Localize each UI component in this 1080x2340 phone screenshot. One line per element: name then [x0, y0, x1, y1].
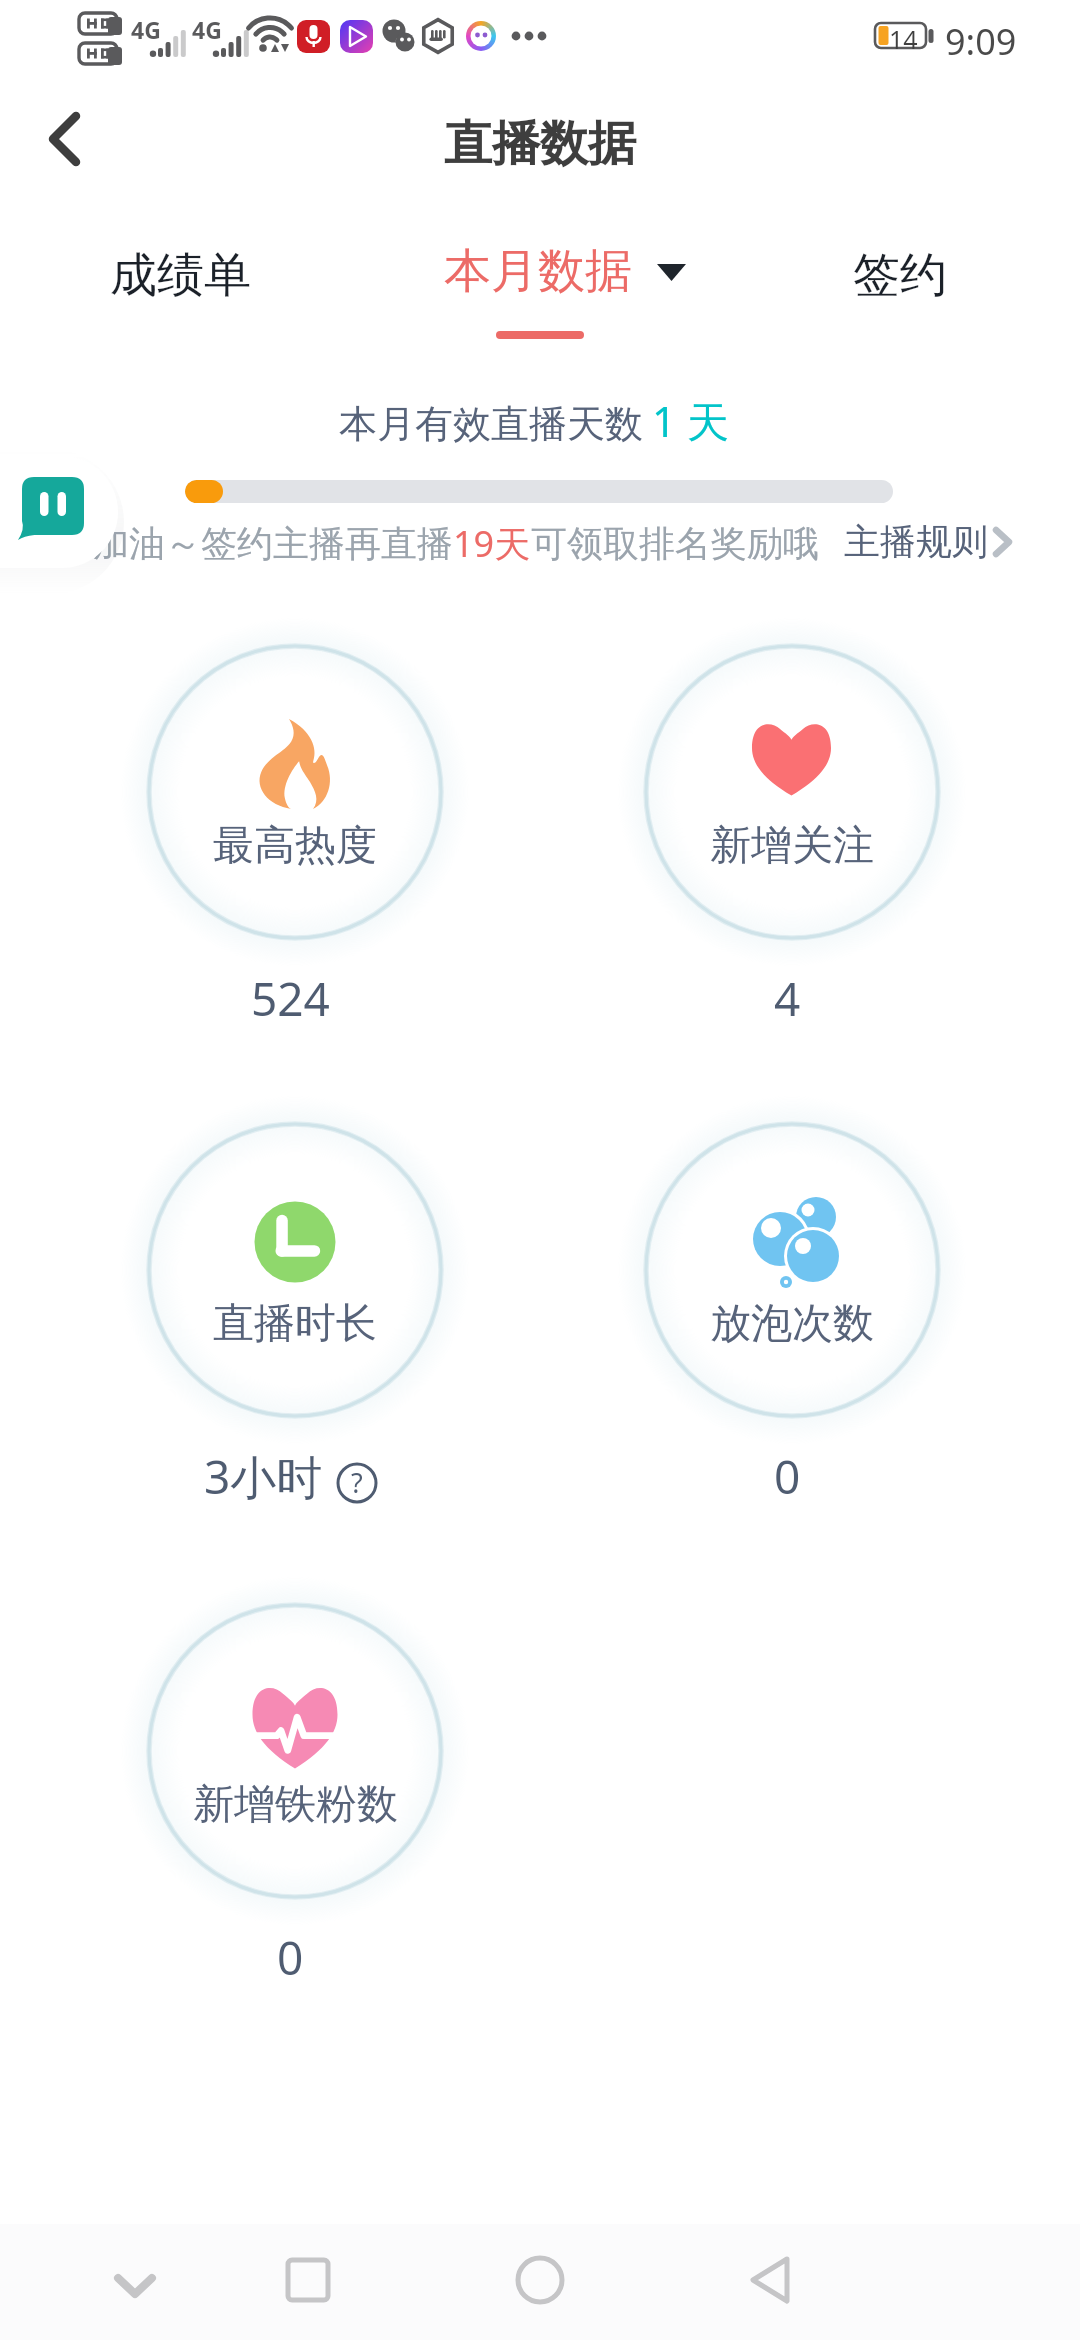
button[interactable]: 本月数据: [430, 228, 700, 338]
staticText: 签约: [853, 246, 947, 305]
staticText: 直播时长: [213, 1298, 377, 1350]
staticText: 加油～签约主播再直播: [93, 521, 453, 566]
button[interactable]: 放泡次数: [612, 1090, 972, 1450]
button[interactable]: 最高热度: [115, 612, 475, 972]
button[interactable]: Hide keyboard: [90, 2235, 180, 2325]
staticText: 14: [889, 22, 918, 56]
staticText: 3小时: [204, 1445, 323, 1508]
staticText: 19天: [453, 519, 531, 568]
staticText: 524: [251, 967, 330, 1030]
staticText: 4G: [192, 14, 222, 45]
staticText: 0: [277, 1926, 304, 1989]
button[interactable]: 签约: [800, 228, 1000, 322]
staticText: 0: [774, 1445, 801, 1508]
staticText: 本月有效直播天数: [339, 400, 643, 448]
button[interactable]: Back: [725, 2235, 815, 2325]
button[interactable]: Recent apps: [263, 2235, 353, 2325]
button[interactable]: Back: [18, 94, 110, 186]
staticText: 新增铁粉数: [193, 1779, 398, 1831]
button[interactable]: 主播规则: [844, 519, 1016, 564]
staticText: 可领取排名奖励哦: [531, 521, 819, 566]
staticText: 4G: [131, 14, 161, 45]
staticText: 1 天: [652, 392, 729, 449]
staticText: 最高热度: [213, 820, 377, 872]
staticText: 4: [774, 967, 801, 1030]
button[interactable]: 成绩单: [70, 228, 290, 322]
staticText: 成绩单: [110, 246, 251, 305]
button[interactable]: 新增铁粉数: [115, 1571, 475, 1931]
staticText: 放泡次数: [710, 1298, 874, 1350]
staticText: 9:09: [945, 17, 1017, 66]
staticText: 直播数据: [444, 114, 636, 174]
button[interactable]: Home: [495, 2235, 585, 2325]
staticText: ?: [351, 1464, 363, 1501]
staticText: 主播规则: [844, 519, 988, 564]
button[interactable]: 直播时长: [115, 1090, 475, 1450]
button[interactable]: Pause floating recorder: [0, 442, 122, 592]
staticText: 新增关注: [710, 820, 874, 872]
button[interactable]: 新增关注: [612, 612, 972, 972]
button[interactable]: Help: [337, 1463, 377, 1503]
staticText: 本月数据: [444, 242, 632, 301]
